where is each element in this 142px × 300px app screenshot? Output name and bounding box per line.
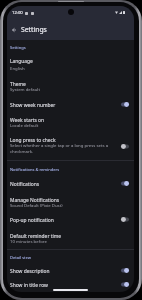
staticText: Settings bbox=[10, 45, 26, 50]
staticText: Long press to check bbox=[10, 137, 56, 144]
staticText: Language bbox=[10, 58, 33, 65]
staticText: 12:00 bbox=[12, 10, 23, 16]
button[interactable]: Show week number bbox=[120, 102, 130, 109]
staticText: checkmark. bbox=[10, 148, 34, 154]
button[interactable]: Notifications bbox=[120, 181, 130, 188]
button[interactable]: Show in title row bbox=[120, 282, 130, 289]
staticText: English bbox=[10, 65, 25, 71]
button[interactable]: Pop-up notification bbox=[120, 217, 130, 224]
staticText: Show in title row bbox=[10, 282, 48, 289]
staticText: Show description bbox=[10, 268, 50, 275]
staticText: Select whether a single tap or a long pr… bbox=[10, 142, 109, 148]
button[interactable]: Long press to check bbox=[120, 144, 130, 151]
button[interactable]: Show in title row bbox=[7, 279, 134, 292]
staticText: Notifications bbox=[10, 181, 40, 188]
staticText: 10 minutes before bbox=[10, 238, 47, 244]
button[interactable]: Show description bbox=[7, 264, 134, 279]
staticText: Week starts on bbox=[10, 117, 45, 124]
staticText: Manage Notifications bbox=[10, 197, 60, 204]
staticText: Show week number bbox=[10, 102, 56, 109]
button[interactable]: Notifications bbox=[7, 177, 134, 192]
button[interactable]: Manage Notifications bbox=[7, 192, 134, 213]
button[interactable]: Show week number bbox=[7, 98, 134, 113]
staticText: Sound Default (Pixie Dust) bbox=[10, 202, 63, 208]
staticText: Locale default bbox=[10, 122, 39, 128]
button[interactable]: Pop-up notification bbox=[7, 213, 134, 228]
button[interactable]: Show description bbox=[120, 268, 130, 275]
staticText: Default reminder time bbox=[10, 233, 62, 240]
staticText: Notifications & reminders bbox=[10, 167, 60, 172]
staticText: Detail view bbox=[10, 255, 31, 260]
button[interactable]: Theme bbox=[7, 76, 134, 98]
button[interactable]: Default reminder time bbox=[7, 228, 134, 249]
button[interactable]: Week starts on bbox=[7, 113, 134, 134]
staticText: Pop-up notification bbox=[10, 217, 54, 224]
staticText: Theme bbox=[10, 81, 26, 88]
button[interactable]: Long press to check bbox=[7, 134, 134, 160]
button[interactable]: Back bbox=[9, 23, 19, 36]
staticText: Settings bbox=[21, 25, 47, 34]
staticText: System default bbox=[10, 86, 40, 92]
button[interactable]: Language bbox=[7, 54, 134, 76]
